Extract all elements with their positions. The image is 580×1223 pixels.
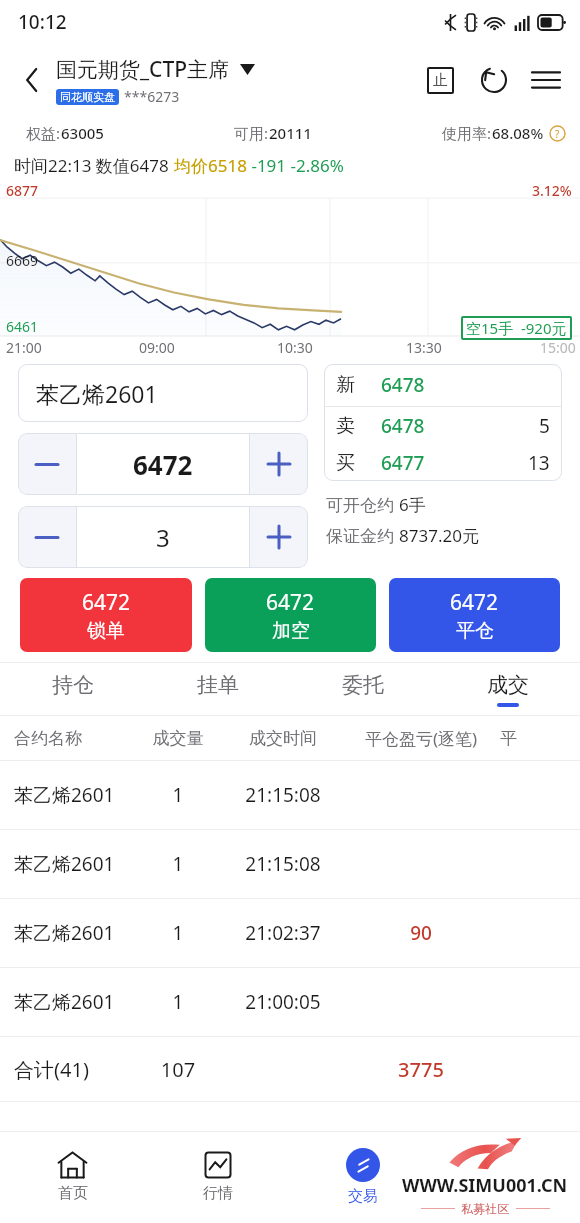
staticText: ***6273 bbox=[124, 87, 180, 106]
button[interactable]: 3 bbox=[77, 506, 249, 568]
button[interactable]: 6472 bbox=[77, 433, 249, 495]
button[interactable]: Decrease bbox=[18, 433, 76, 495]
button[interactable]: 6472 bbox=[205, 578, 376, 652]
staticText: 同花顺实盘 bbox=[60, 90, 115, 104]
staticText: 挂单 bbox=[197, 672, 239, 698]
button[interactable]: 成交 bbox=[435, 663, 580, 715]
staticText: 可开仓约 bbox=[326, 493, 399, 516]
button[interactable]: Help bbox=[549, 125, 566, 142]
staticText: 新 bbox=[336, 373, 355, 397]
staticText: 3775 bbox=[342, 1056, 500, 1083]
button[interactable]: Increase bbox=[250, 506, 308, 568]
staticText: 3 bbox=[156, 521, 170, 554]
staticText: 21:02:37 bbox=[224, 920, 342, 946]
staticText: ? bbox=[555, 127, 560, 141]
staticText: 苯乙烯2601 bbox=[14, 920, 132, 946]
staticText: 21:00 bbox=[6, 338, 42, 357]
button[interactable]: 6472 bbox=[389, 578, 560, 652]
staticText: 私募社区 bbox=[455, 1200, 516, 1216]
staticText: 1 bbox=[132, 782, 224, 808]
staticText: 使用率: bbox=[442, 123, 492, 143]
staticText: 107 bbox=[132, 1056, 224, 1083]
staticText: 21:00:05 bbox=[224, 989, 342, 1015]
staticText: 10:12 bbox=[18, 9, 67, 35]
button[interactable]: 首页 bbox=[0, 1131, 145, 1223]
staticText: 权益: bbox=[26, 123, 61, 143]
staticText: 1 bbox=[132, 989, 224, 1015]
staticText: 国元期货_CTP主席 bbox=[56, 55, 230, 84]
button[interactable]: 6472 bbox=[20, 578, 192, 652]
staticText: 6877 bbox=[6, 181, 39, 200]
staticText: 止 bbox=[433, 71, 448, 90]
staticText: 买 bbox=[336, 451, 355, 475]
staticText: -191 -2.86% bbox=[247, 154, 344, 177]
button[interactable]: Stop loss bbox=[420, 60, 460, 100]
staticText: 成交 bbox=[487, 672, 529, 698]
staticText: 持仓 bbox=[52, 672, 94, 698]
button[interactable]: 苯乙烯2601 bbox=[14, 899, 580, 967]
button[interactable]: 苯乙烯2601 bbox=[14, 830, 580, 898]
button[interactable]: 国元期货_CTP主席 bbox=[56, 55, 420, 106]
button[interactable]: 苯乙烯2601 bbox=[14, 968, 580, 1036]
staticText: 合计(41) bbox=[14, 1056, 132, 1083]
staticText: 6手 bbox=[399, 493, 426, 516]
staticText: 苯乙烯2601 bbox=[36, 378, 158, 409]
button[interactable]: 挂单 bbox=[145, 663, 290, 715]
button[interactable]: Back bbox=[14, 62, 50, 98]
staticText: 6461 bbox=[6, 317, 39, 336]
staticText: 8737.20元 bbox=[399, 524, 479, 547]
staticText: 合约名称 bbox=[14, 728, 132, 749]
staticText: 交易 bbox=[348, 1187, 378, 1206]
staticText: 6477 bbox=[381, 450, 425, 476]
staticText: 平仓 bbox=[456, 619, 494, 643]
button[interactable]: 委托 bbox=[290, 663, 435, 715]
button[interactable]: 持仓 bbox=[0, 663, 145, 715]
staticText: 6472 bbox=[266, 588, 315, 617]
button[interactable]: 行情 bbox=[145, 1131, 290, 1223]
staticText: 苯乙烯2601 bbox=[14, 782, 132, 808]
staticText: 时间22:13 数值6478 bbox=[14, 154, 174, 177]
staticText: 均价6518 bbox=[174, 154, 247, 177]
staticText: 13 bbox=[528, 450, 550, 476]
staticText: 成交量 bbox=[132, 728, 224, 749]
staticText: 6472 bbox=[82, 588, 131, 617]
button[interactable]: 交易 bbox=[290, 1131, 435, 1223]
staticText: 可用: bbox=[234, 123, 269, 143]
button[interactable]: 苯乙烯2601 bbox=[14, 761, 580, 829]
staticText: 20111 bbox=[269, 123, 312, 143]
staticText: 平 bbox=[500, 728, 517, 749]
staticText: 63005 bbox=[61, 123, 104, 143]
staticText: 平仓盈亏(逐笔) bbox=[342, 727, 500, 750]
staticText: 委托 bbox=[342, 672, 384, 698]
staticText: 6478 bbox=[381, 372, 425, 398]
staticText: 锁单 bbox=[87, 619, 125, 643]
staticText: 保证金约 bbox=[326, 524, 399, 547]
button[interactable]: 新 bbox=[336, 364, 550, 406]
staticText: 加空 bbox=[272, 619, 310, 643]
staticText: 5 bbox=[539, 413, 550, 439]
staticText: 6669 bbox=[6, 251, 39, 270]
staticText: 苯乙烯2601 bbox=[14, 851, 132, 877]
staticText: 成交时间 bbox=[224, 728, 342, 749]
staticText: 09:00 bbox=[139, 338, 175, 357]
button[interactable]: Decrease bbox=[18, 506, 76, 568]
button[interactable]: 卖 bbox=[336, 407, 550, 444]
staticText: 21:15:08 bbox=[224, 851, 342, 877]
staticText: 3.12% bbox=[532, 181, 572, 200]
button[interactable]: 苯乙烯2601 bbox=[18, 364, 308, 422]
staticText: WWW.SIMU001.CN bbox=[402, 1173, 568, 1198]
staticText: 6472 bbox=[450, 588, 499, 617]
button[interactable]: 买 bbox=[336, 444, 550, 481]
staticText: 10:30 bbox=[277, 338, 313, 357]
staticText: 苯乙烯2601 bbox=[14, 989, 132, 1015]
staticText: 21:15:08 bbox=[224, 782, 342, 808]
button[interactable]: Menu bbox=[526, 60, 566, 100]
staticText: 15:00 bbox=[540, 338, 576, 357]
staticText: 13:30 bbox=[406, 338, 442, 357]
button[interactable]: Refresh bbox=[474, 60, 514, 100]
staticText: 1 bbox=[132, 851, 224, 877]
button[interactable]: Increase bbox=[250, 433, 308, 495]
